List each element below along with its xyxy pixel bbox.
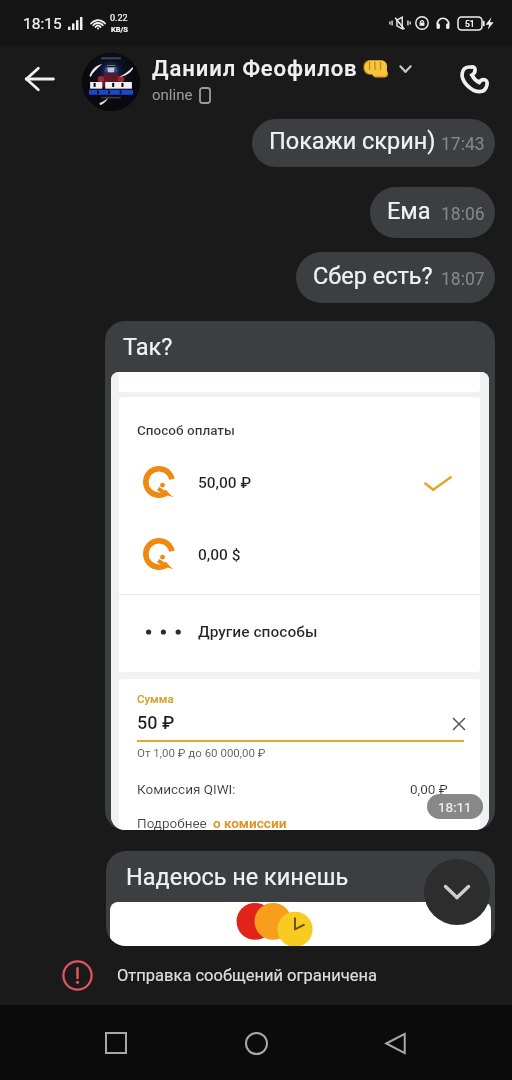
button[interactable]: Другие способы xyxy=(119,603,480,661)
staticText: Комиссия QIWI: xyxy=(137,781,236,797)
staticText: Подробнее xyxy=(137,815,207,830)
staticText: 0.22 xyxy=(110,13,128,24)
staticText: KB/S xyxy=(111,25,128,34)
staticText: Надеюсь не кинешь xyxy=(126,863,349,891)
button[interactable]: Подробнее xyxy=(137,815,287,830)
staticText: о комиссии xyxy=(213,815,287,830)
staticText: 18:07 xyxy=(441,269,485,290)
staticText: 50 ₽ xyxy=(137,712,175,733)
staticText: Покажи скрин) xyxy=(269,127,436,155)
button[interactable] xyxy=(82,53,140,111)
staticText: 18:06 xyxy=(441,204,485,225)
button[interactable]: 0,00 $ xyxy=(119,525,480,585)
button[interactable]: Scroll to bottom xyxy=(424,859,490,925)
button[interactable]: Даниил Феофилов xyxy=(152,56,412,82)
button[interactable]: Так? xyxy=(105,321,495,830)
button[interactable]: Home xyxy=(230,1017,282,1069)
button[interactable]: Back xyxy=(369,1017,421,1069)
button[interactable]: Ема xyxy=(370,187,495,238)
staticText: 50,00 ₽ xyxy=(198,474,252,492)
staticText: 0,00 ₽ xyxy=(410,781,448,797)
staticText: Ема xyxy=(387,197,431,225)
staticText: Так? xyxy=(123,333,173,361)
staticText: 18:15 xyxy=(23,15,62,33)
button[interactable]: Recent apps xyxy=(90,1017,142,1069)
staticText: 51 xyxy=(465,19,475,29)
staticText: От 1,00 ₽ до 60 000,00 ₽ xyxy=(137,746,266,759)
button[interactable]: 50,00 ₽ xyxy=(119,453,480,513)
staticText: online xyxy=(152,86,193,104)
button[interactable]: Clear amount xyxy=(446,711,472,737)
staticText: Способ оплаты xyxy=(137,422,235,438)
staticText: Даниил Феофилов xyxy=(152,56,358,82)
button[interactable]: Сбер есть? xyxy=(296,252,495,303)
staticText: 18:11 xyxy=(438,799,472,815)
button[interactable]: Надеюсь не кинешь xyxy=(106,851,495,946)
button[interactable]: Покажи скрин) xyxy=(252,119,495,167)
staticText: Сумма xyxy=(137,692,174,705)
staticText: 17:43 xyxy=(441,134,485,155)
staticText: Сбер есть? xyxy=(313,262,433,290)
staticText: Отправка сообщений ограничена xyxy=(117,966,377,985)
staticText: Другие способы xyxy=(198,623,318,641)
button[interactable]: Back xyxy=(12,52,66,106)
staticText: 0,00 $ xyxy=(198,546,241,564)
button[interactable]: Call xyxy=(449,54,499,104)
